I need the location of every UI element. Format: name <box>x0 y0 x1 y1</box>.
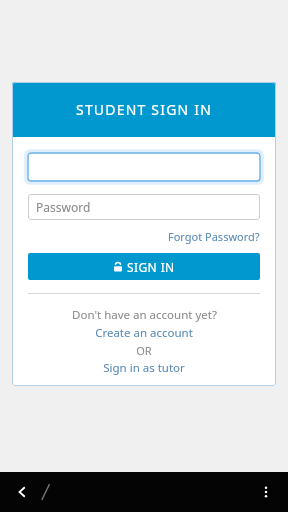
staticText: OR <box>136 343 152 358</box>
button[interactable]: Back <box>8 478 36 506</box>
staticText: Forgot Password? <box>168 229 260 244</box>
staticText: STUDENT SIGN IN <box>76 100 213 119</box>
staticText: Sign in as tutor <box>103 360 185 376</box>
staticText: Password <box>36 199 91 215</box>
button[interactable]: Sign in as tutor <box>103 360 185 376</box>
staticText: Don't have an account yet? <box>72 307 217 323</box>
staticText: Create an account <box>95 325 193 341</box>
button[interactable]: Forgot Password? <box>168 229 260 244</box>
button[interactable]: Password <box>28 194 260 220</box>
button[interactable]: More options <box>252 478 280 506</box>
button[interactable]: SIGN IN <box>28 253 260 280</box>
button[interactable]: Create an account <box>95 325 193 341</box>
button[interactable] <box>28 153 260 181</box>
button[interactable]: Recents <box>32 478 60 506</box>
staticText: SIGN IN <box>127 259 175 275</box>
